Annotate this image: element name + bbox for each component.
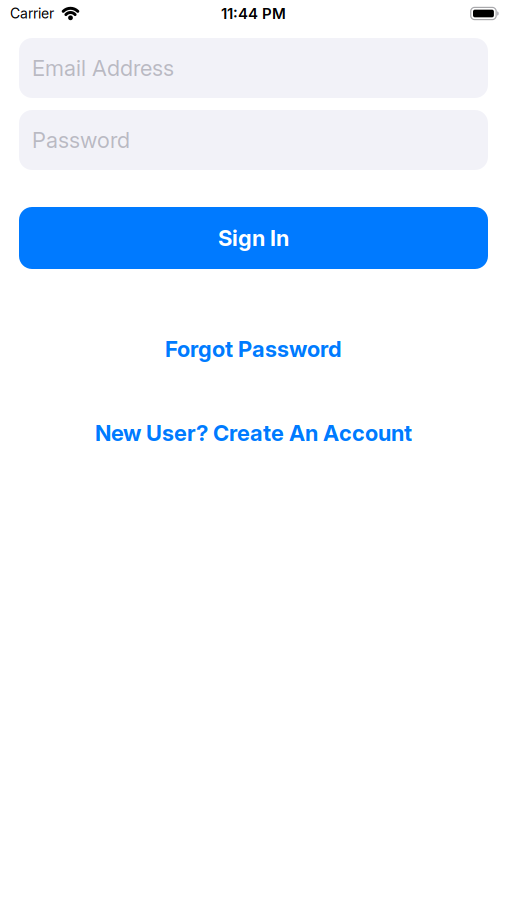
- staticText: Forgot Password: [165, 336, 342, 362]
- staticText: Password: [32, 127, 130, 153]
- staticText: Carrier: [10, 5, 54, 22]
- staticText: 11:44 PM: [221, 5, 286, 22]
- button[interactable]: Email Address: [19, 38, 488, 98]
- button[interactable]: Sign In: [19, 207, 488, 269]
- staticText: Sign In: [218, 225, 289, 251]
- button[interactable]: New User? Create An Account: [95, 420, 412, 446]
- button[interactable]: Forgot Password: [165, 336, 342, 362]
- staticText: New User? Create An Account: [95, 420, 412, 446]
- staticText: Email Address: [32, 55, 174, 81]
- button[interactable]: Password: [19, 110, 488, 170]
